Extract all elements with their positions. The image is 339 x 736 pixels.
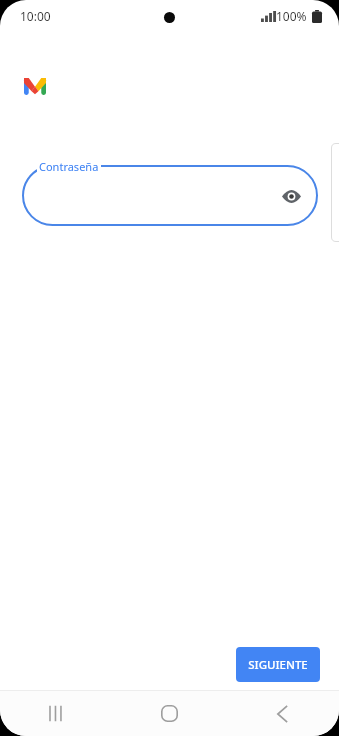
staticText: 100% [276, 8, 307, 24]
button[interactable]: Home [113, 691, 226, 736]
staticText: 10:00 [20, 8, 51, 24]
staticText: SIGUIENTE [248, 657, 308, 673]
button[interactable]: SIGUIENTE [236, 647, 320, 682]
button[interactable]: Mostrar contraseña [22, 165, 318, 226]
button[interactable]: Recents [0, 691, 113, 736]
button[interactable]: Back [226, 691, 339, 736]
other: Gmail [24, 78, 46, 95]
button[interactable]: Mostrar contraseña [278, 183, 304, 209]
staticText: Contraseña [39, 159, 99, 174]
